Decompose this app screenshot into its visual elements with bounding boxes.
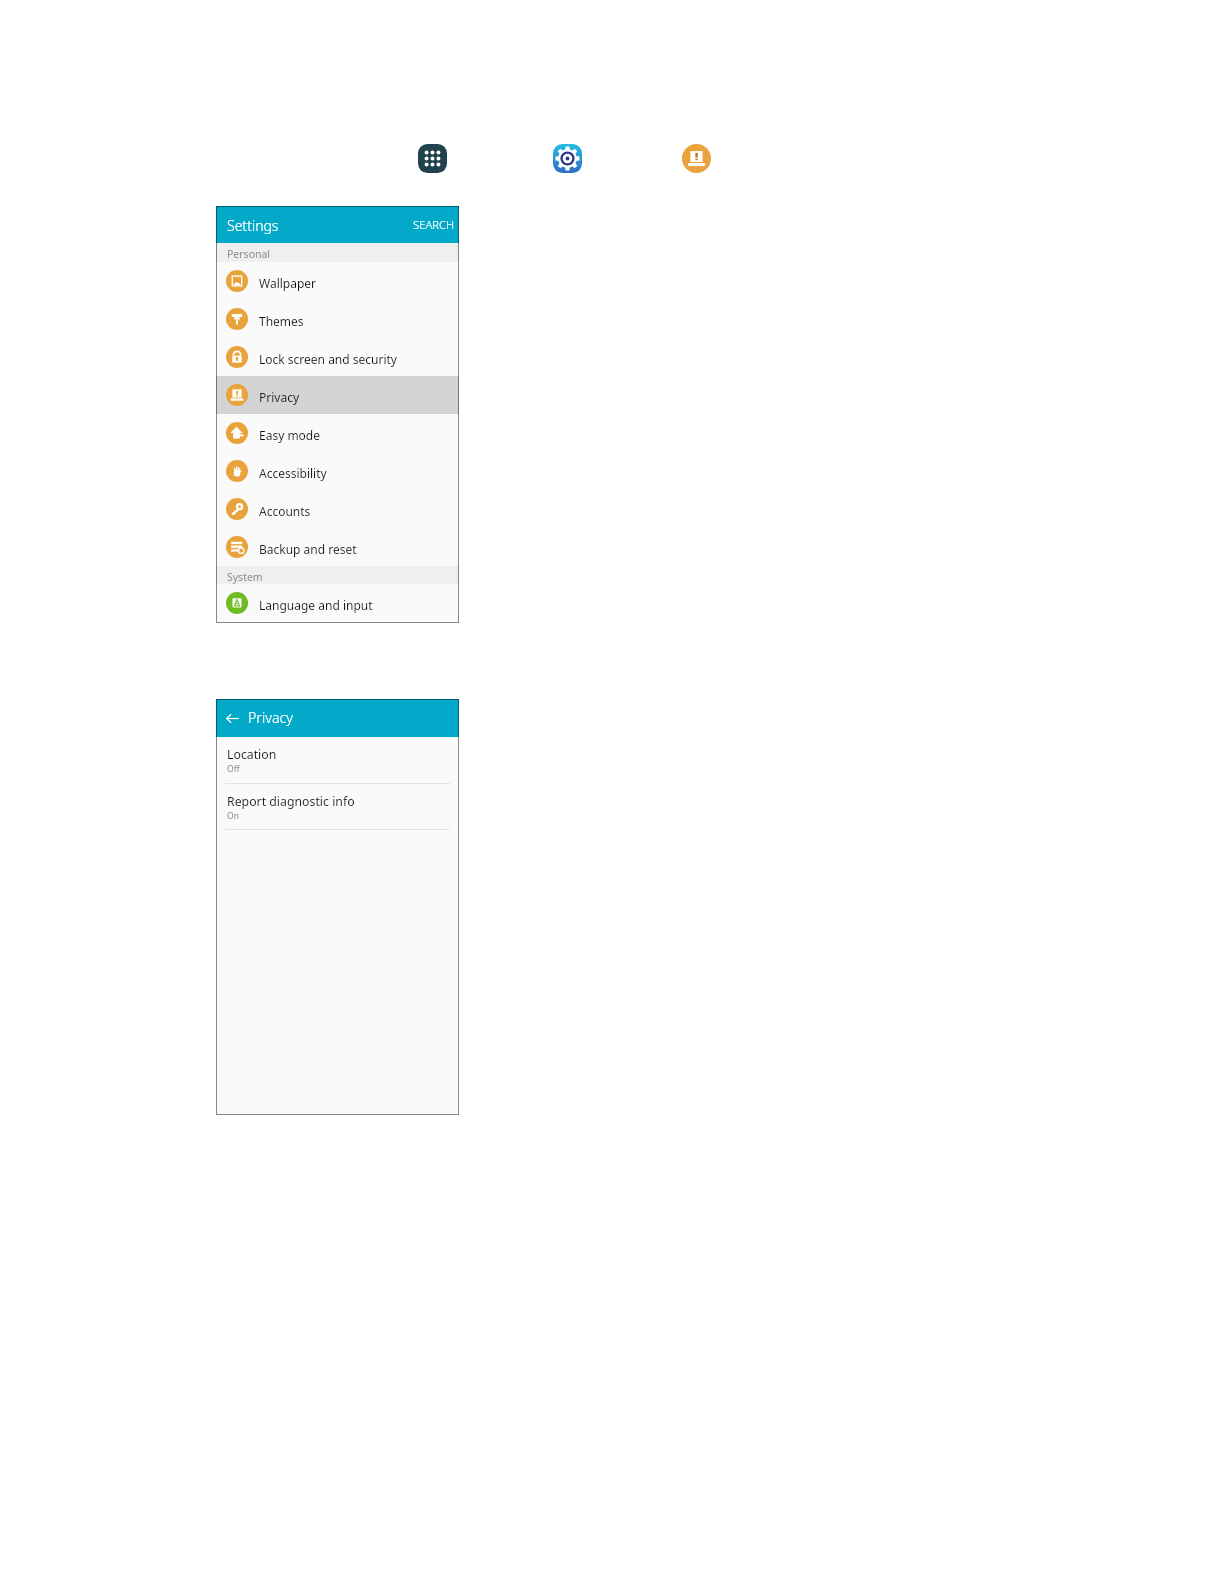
staticText: SEARCH bbox=[413, 217, 455, 232]
staticText: Wallpaper bbox=[259, 275, 317, 291]
staticText: Privacy bbox=[259, 389, 300, 405]
staticText: Themes bbox=[259, 313, 304, 329]
button[interactable]: Lock screen and security bbox=[216, 338, 459, 376]
button[interactable]: Apps bbox=[418, 144, 447, 173]
staticText: System bbox=[227, 570, 263, 584]
staticText: On bbox=[227, 810, 239, 822]
staticText: Off bbox=[227, 763, 240, 775]
staticText: Language and input bbox=[259, 597, 373, 613]
button[interactable]: Accessibility bbox=[216, 452, 459, 490]
staticText: Backup and reset bbox=[259, 541, 357, 557]
button[interactable]: Privacy bbox=[216, 376, 459, 414]
staticText: Lock screen and security bbox=[259, 351, 397, 367]
staticText: Settings bbox=[227, 216, 279, 235]
button[interactable]: Location bbox=[216, 737, 459, 784]
staticText: Report diagnostic info bbox=[227, 793, 355, 810]
button[interactable]: Settings bbox=[553, 144, 582, 173]
button[interactable]: Easy mode bbox=[216, 414, 459, 452]
button[interactable]: Report diagnostic info bbox=[216, 784, 459, 830]
staticText: Accessibility bbox=[259, 465, 327, 481]
staticText: Personal bbox=[227, 247, 271, 261]
button[interactable]: Back bbox=[221, 707, 244, 730]
staticText: Privacy bbox=[248, 708, 293, 727]
button[interactable]: Themes bbox=[216, 300, 459, 338]
button[interactable]: Language and input bbox=[216, 584, 459, 622]
staticText: Accounts bbox=[259, 503, 311, 519]
button[interactable]: Wallpaper bbox=[216, 262, 459, 300]
button[interactable]: Accounts bbox=[216, 490, 459, 528]
staticText: Location bbox=[227, 746, 277, 763]
staticText: Easy mode bbox=[259, 427, 321, 443]
button[interactable]: SEARCH bbox=[406, 210, 459, 239]
button[interactable]: Privacy bbox=[682, 144, 711, 173]
button[interactable]: Backup and reset bbox=[216, 528, 459, 566]
